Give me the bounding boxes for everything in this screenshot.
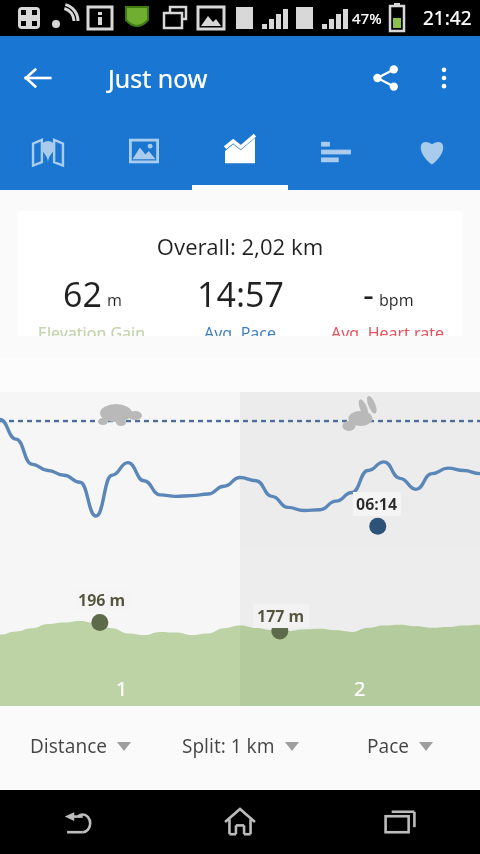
- button[interactable]: Split: 1 km: [160, 706, 320, 786]
- button[interactable]: Heart rate: [384, 120, 480, 190]
- staticText: 14:57: [197, 271, 284, 317]
- staticText: 06:14: [356, 493, 398, 515]
- staticText: 1: [116, 675, 128, 702]
- staticText: 2: [354, 675, 366, 702]
- button[interactable]: Splits: [288, 120, 384, 190]
- staticText: 47%: [352, 8, 382, 28]
- staticText: Distance: [30, 733, 107, 759]
- button[interactable]: Photos: [96, 120, 192, 190]
- staticText: 21:42: [423, 5, 472, 31]
- staticText: Pace: [367, 733, 409, 759]
- staticText: 196 m: [78, 589, 126, 611]
- button[interactable]: Distance: [0, 706, 160, 786]
- button[interactable]: More options: [416, 50, 472, 106]
- button[interactable]: Share: [358, 50, 414, 106]
- button[interactable]: Overall: 2,02 km: [18, 211, 462, 336]
- button[interactable]: Map: [0, 120, 96, 190]
- staticText: 177 m: [257, 605, 305, 627]
- button[interactable]: Charts: [192, 120, 288, 190]
- button[interactable]: Pace: [320, 706, 480, 786]
- button[interactable]: Back: [0, 790, 160, 854]
- staticText: m: [107, 289, 122, 311]
- staticText: -: [363, 271, 374, 317]
- button[interactable]: 196 m: [0, 549, 480, 706]
- staticText: Just now: [108, 61, 208, 95]
- staticText: Elevation Gain: [38, 322, 146, 336]
- button[interactable]: Recent apps: [320, 790, 480, 854]
- staticText: Overall: 2,02 km: [18, 231, 462, 261]
- button[interactable]: 06:14: [0, 392, 480, 549]
- button[interactable]: Home: [160, 790, 320, 854]
- button[interactable]: Back: [10, 50, 66, 106]
- staticText: 62: [63, 271, 102, 317]
- staticText: bpm: [379, 289, 414, 311]
- staticText: Split: 1 km: [182, 733, 275, 759]
- staticText: Avg. Heart rate: [331, 322, 445, 336]
- staticText: Avg. Pace: [204, 322, 277, 336]
